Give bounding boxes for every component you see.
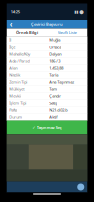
button[interactable]: İl [7, 36, 87, 43]
staticText: Ada / Parsel [9, 58, 30, 64]
button[interactable]: Mahalle/Köy [7, 50, 87, 57]
staticText: ▮▮ ⬤ [74, 9, 83, 14]
staticText: Dalyan [49, 51, 61, 57]
button[interactable]: İlçe [7, 43, 87, 50]
staticText: ✓ [32, 125, 35, 130]
staticText: Ana Taşınmaz [49, 79, 74, 85]
staticText: İlçe [9, 44, 15, 50]
staticText: Zemin Tipi [9, 79, 27, 85]
staticText: Ortaca [49, 44, 61, 50]
staticText: Taşınmaz Seç [37, 125, 62, 130]
staticText: Mülkiyet [9, 86, 24, 92]
staticText: 1.453,88 [49, 65, 63, 71]
button[interactable]: Pafta [7, 106, 87, 113]
staticText: Vasıflı Liste [58, 30, 77, 35]
button[interactable]: ✓ [7, 120, 87, 134]
staticText: ‹ [10, 19, 13, 29]
staticText: Nitelik [9, 72, 20, 78]
button[interactable]: Vasıflı Liste [47, 28, 87, 36]
staticText: Durum [9, 114, 22, 120]
staticText: Çevirici Başvuru [31, 22, 63, 27]
staticText: 186 / 3 [49, 58, 60, 64]
button[interactable]: Locate [77, 183, 84, 190]
staticText: Muğla [49, 37, 60, 43]
button[interactable]: Ada / Parsel [7, 57, 87, 64]
staticText: Örnek Bilgi [16, 30, 38, 35]
staticText: İl [9, 37, 11, 43]
staticText: Mahalle/Köy [9, 51, 30, 57]
staticText: 14:25 [11, 9, 20, 14]
staticText: Aktif [49, 114, 57, 120]
staticText: Mevkii [9, 93, 21, 99]
button[interactable]: İşlem Tipi [7, 99, 87, 106]
button[interactable]: Alan [7, 64, 87, 71]
button[interactable]: Durum [7, 113, 87, 120]
staticText: Çandır [49, 93, 61, 99]
button[interactable]: Nitelik [7, 71, 87, 78]
staticText: İşlem Tipi [9, 100, 26, 106]
button[interactable]: Back [7, 20, 16, 28]
staticText: Pafta [9, 107, 17, 113]
staticText: Tam [49, 86, 57, 92]
button[interactable]: Mevkii [7, 92, 87, 99]
button[interactable]: Mülkiyet [7, 85, 87, 92]
staticText: Tarla [49, 72, 58, 78]
staticText: N21-d-02-b [49, 107, 67, 113]
button[interactable]: Örnek Bilgi [7, 28, 47, 36]
staticText: Satış [49, 100, 57, 106]
staticText: Alan [9, 65, 17, 71]
button[interactable]: Zemin Tipi [7, 78, 87, 85]
